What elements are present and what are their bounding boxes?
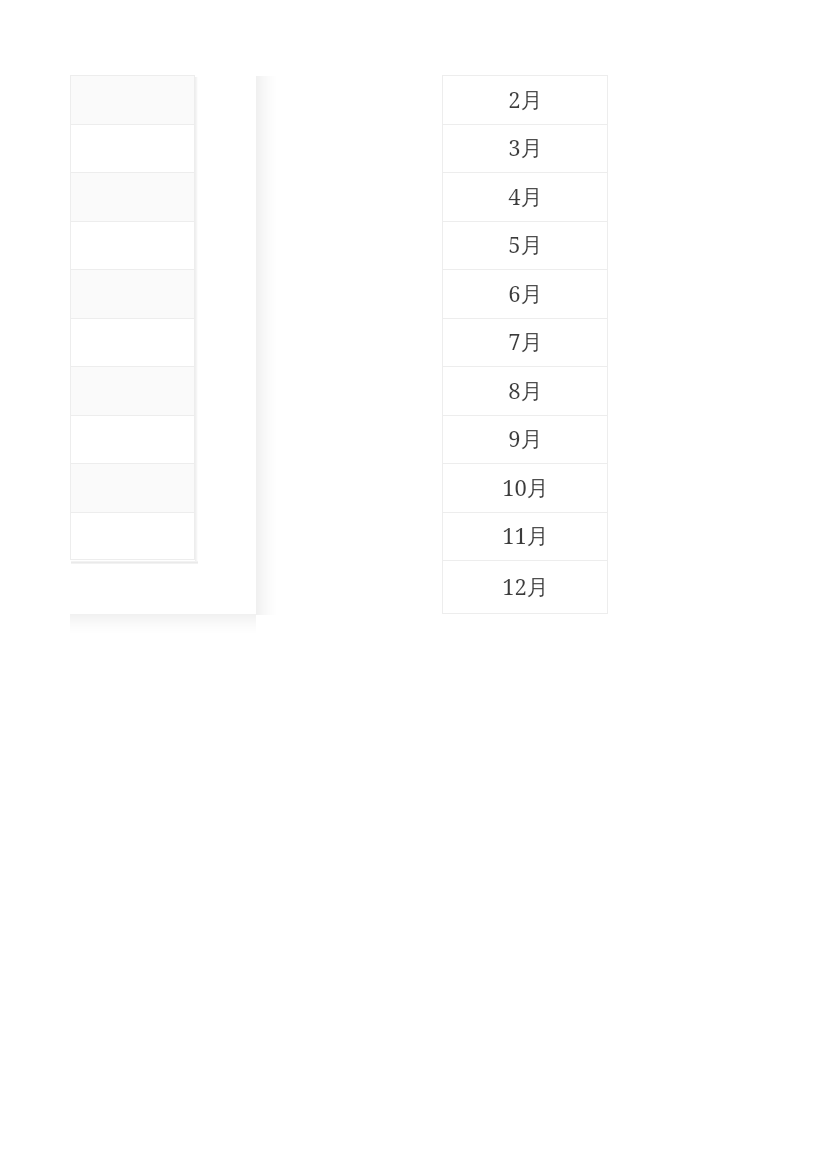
staticText: 5月 [508,229,543,259]
button[interactable]: 5月 [442,221,608,269]
staticText: 3月 [508,132,543,162]
staticText: 12月 [502,571,549,601]
staticText: 10月 [502,472,549,502]
staticText: 2月 [508,84,543,114]
button[interactable]: 6月 [442,269,608,318]
button[interactable]: 11月 [442,512,608,560]
other: Empty data table [70,75,195,560]
button[interactable]: 12月 [442,560,608,614]
button[interactable] [70,415,195,463]
staticText: 9月 [508,423,543,453]
button[interactable] [70,512,195,560]
button[interactable]: 4月 [442,172,608,221]
staticText: 4月 [508,181,543,211]
button[interactable] [70,318,195,366]
button[interactable]: 8月 [442,366,608,415]
staticText: 8月 [508,375,543,405]
button[interactable] [70,221,195,269]
button[interactable]: 7月 [442,318,608,366]
button[interactable]: 9月 [442,415,608,463]
staticText: 6月 [508,278,543,308]
button[interactable]: 2月 [442,75,608,124]
button[interactable]: 10月 [442,463,608,512]
button[interactable]: 3月 [442,124,608,172]
button[interactable] [70,124,195,172]
staticText: 7月 [508,326,543,356]
staticText: 11月 [502,520,549,550]
